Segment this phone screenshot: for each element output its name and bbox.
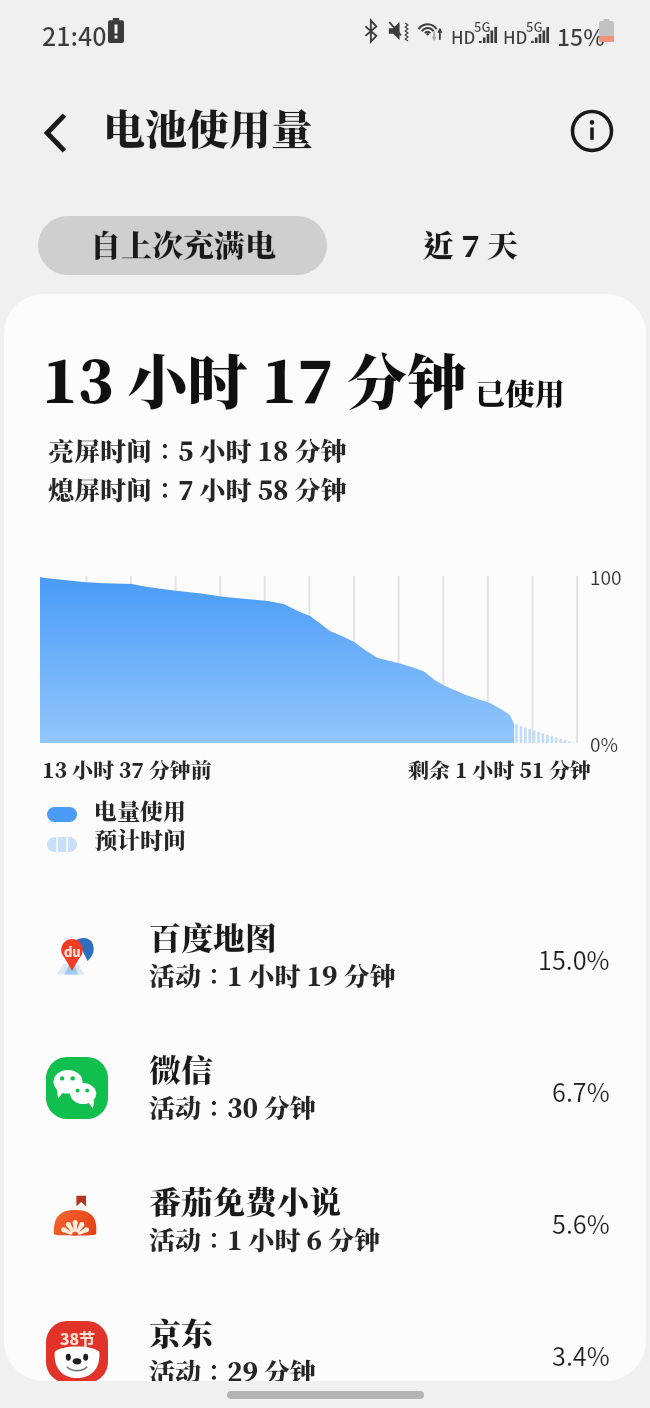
staticText: 活动：29 分钟 xyxy=(149,1357,317,1381)
button[interactable]: du xyxy=(4,890,646,1022)
staticText: 5G xyxy=(526,17,543,36)
staticText: 38节 xyxy=(60,1326,95,1349)
staticText: 活动：1 小时 6 分钟 xyxy=(149,1225,381,1256)
staticText: 0% xyxy=(590,730,619,758)
staticText: 13 小时 37 分钟前 xyxy=(42,758,212,783)
staticText: 活动：1 小时 19 分钟 xyxy=(149,961,396,992)
staticText: 21:40 xyxy=(42,17,107,53)
staticText: 熄屏时间：7 小时 58 分钟 xyxy=(48,475,347,506)
button[interactable]: Back xyxy=(30,107,82,159)
staticText: 自上次充满电 xyxy=(90,227,276,264)
staticText: 电池使用量 xyxy=(103,104,314,154)
staticText: 微信 xyxy=(149,1051,214,1089)
staticText: 15% xyxy=(557,19,605,52)
staticText: 预计时间 xyxy=(94,827,186,854)
staticText: 电量使用 xyxy=(94,798,186,825)
button[interactable]: 微信 xyxy=(4,1022,646,1154)
button[interactable]: 番茄免费小说 xyxy=(4,1154,646,1286)
staticText: 100 xyxy=(590,563,622,591)
staticText: 6.7% xyxy=(552,1073,610,1109)
staticText: 剩余 1 小时 51 分钟 xyxy=(408,758,592,783)
staticText: 京东 xyxy=(149,1315,214,1353)
staticText: 13 小时 17 分钟 xyxy=(42,346,467,417)
button[interactable]: 自上次充满电 xyxy=(38,216,327,275)
staticText: 5.6% xyxy=(552,1205,610,1241)
button[interactable]: 38节 xyxy=(4,1286,646,1381)
staticText: HD xyxy=(503,24,528,49)
staticText: 百度地图 xyxy=(149,919,278,957)
staticText: 亮屏时间：5 小时 18 分钟 xyxy=(48,436,347,467)
button[interactable]: 近 7 天 xyxy=(345,216,595,275)
staticText: 15.0% xyxy=(538,941,610,977)
button[interactable]: Information xyxy=(566,105,618,157)
staticText: 近 7 天 xyxy=(423,227,518,264)
staticText: 已使用 xyxy=(475,376,565,411)
staticText: HD xyxy=(451,24,476,49)
staticText: 5G xyxy=(474,17,491,36)
staticText: 3.4% xyxy=(552,1337,610,1373)
staticText: du xyxy=(64,942,81,961)
staticText: 番茄免费小说 xyxy=(149,1183,342,1221)
staticText: 活动：30 分钟 xyxy=(149,1093,317,1124)
